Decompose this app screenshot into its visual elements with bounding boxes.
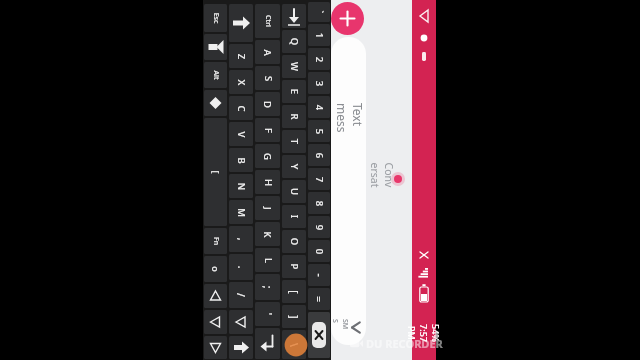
button[interactable]: key <box>204 284 227 308</box>
staticText: K <box>261 231 274 238</box>
staticText: [ <box>209 170 221 173</box>
staticText: ; <box>260 285 274 288</box>
button[interactable]: Alt <box>204 62 227 88</box>
staticText: M <box>235 208 248 217</box>
button[interactable]: H <box>255 170 280 194</box>
button[interactable]: Ctrl <box>255 4 280 38</box>
button[interactable]: W <box>282 55 306 78</box>
button[interactable]: 8 <box>308 192 330 214</box>
staticText: Text message <box>331 103 366 138</box>
button[interactable]: 3 <box>308 72 330 94</box>
button[interactable]: key <box>282 4 306 28</box>
button[interactable]: B <box>229 148 253 172</box>
staticText: SMS <box>331 319 350 333</box>
staticText: Y <box>287 163 300 169</box>
button[interactable]: Start new conversation <box>331 2 364 35</box>
staticText: Z <box>234 53 247 59</box>
button[interactable]: key <box>229 336 253 359</box>
button[interactable]: ] <box>282 305 306 328</box>
button[interactable]: D <box>255 92 280 116</box>
button[interactable]: key <box>308 312 330 358</box>
button[interactable]: C <box>229 96 253 120</box>
button[interactable]: Z <box>229 44 253 68</box>
button[interactable]: Esc <box>204 4 227 32</box>
button[interactable]: key <box>204 336 227 359</box>
button[interactable]: F <box>255 118 280 142</box>
button[interactable]: . <box>229 254 253 280</box>
button[interactable]: key <box>204 310 227 334</box>
staticText: 4 <box>312 104 325 110</box>
button[interactable]: Q <box>282 30 306 53</box>
button[interactable]: Y <box>282 155 306 178</box>
button[interactable]: P <box>282 255 306 278</box>
button[interactable]: ; <box>255 274 280 300</box>
staticText: . <box>234 265 248 268</box>
staticText: 1 <box>312 32 325 38</box>
button[interactable]: 5 <box>308 120 330 142</box>
button[interactable]: key <box>255 328 280 359</box>
button[interactable]: Text message <box>331 37 366 345</box>
staticText: - <box>312 273 326 277</box>
staticText: P <box>287 263 300 269</box>
button[interactable]: 0 <box>308 240 330 262</box>
staticText: F <box>261 127 274 133</box>
button[interactable]: ' <box>255 302 280 326</box>
staticText: S <box>261 75 274 81</box>
button[interactable]: - <box>308 264 330 286</box>
staticText: 8 <box>312 200 325 206</box>
button[interactable]: 2 <box>308 48 330 70</box>
button[interactable]: 6 <box>308 144 330 166</box>
staticText: / <box>234 293 248 297</box>
staticText: 0 <box>312 248 325 254</box>
button[interactable]: L <box>255 248 280 272</box>
button[interactable]: \ <box>282 330 306 359</box>
button[interactable]: O <box>282 230 306 253</box>
button[interactable]: U <box>282 180 306 203</box>
button[interactable]: X <box>229 70 253 94</box>
button[interactable]: key <box>204 90 227 116</box>
button[interactable]: Fn <box>204 228 227 254</box>
staticText: Q <box>287 37 300 45</box>
button[interactable]: V <box>229 122 253 146</box>
staticText: X <box>234 79 247 85</box>
button[interactable]: Change SMS type <box>347 315 366 339</box>
staticText: Fn <box>210 236 220 245</box>
button[interactable]: [ <box>282 280 306 303</box>
staticText: G <box>261 153 274 160</box>
button[interactable]: [ <box>204 118 227 226</box>
staticText: 54% 7:57 PM <box>406 321 442 345</box>
button[interactable]: key <box>204 34 227 60</box>
button[interactable]: K <box>255 222 280 246</box>
staticText: o <box>210 266 222 272</box>
staticText: T <box>287 138 300 144</box>
button[interactable]: 9 <box>308 216 330 238</box>
staticText: ` <box>313 10 325 13</box>
button[interactable]: R <box>282 105 306 128</box>
button[interactable]: E <box>282 80 306 103</box>
button[interactable]: 4 <box>308 96 330 118</box>
button[interactable]: M <box>229 200 253 224</box>
staticText: I <box>287 214 300 218</box>
button[interactable]: key <box>229 310 253 334</box>
button[interactable]: / <box>229 282 253 308</box>
staticText: D <box>261 101 274 108</box>
staticText: W <box>288 62 301 71</box>
button[interactable]: , <box>229 226 253 252</box>
staticText: Conversation with Amos · Now <box>370 162 396 188</box>
button[interactable]: A <box>255 40 280 64</box>
button[interactable]: J <box>255 196 280 220</box>
button[interactable]: 7 <box>308 168 330 190</box>
staticText: A <box>261 49 274 56</box>
button[interactable]: G <box>255 144 280 168</box>
staticText: E <box>287 88 300 94</box>
button[interactable]: = <box>308 288 330 310</box>
staticText: J <box>261 207 274 210</box>
button[interactable]: 1 <box>308 24 330 46</box>
button[interactable]: o <box>204 256 227 282</box>
button[interactable]: ` <box>308 2 330 22</box>
button[interactable]: key <box>229 4 253 42</box>
button[interactable]: T <box>282 130 306 153</box>
button[interactable]: S <box>255 66 280 90</box>
button[interactable]: I <box>282 205 306 228</box>
button[interactable]: N <box>229 174 253 198</box>
